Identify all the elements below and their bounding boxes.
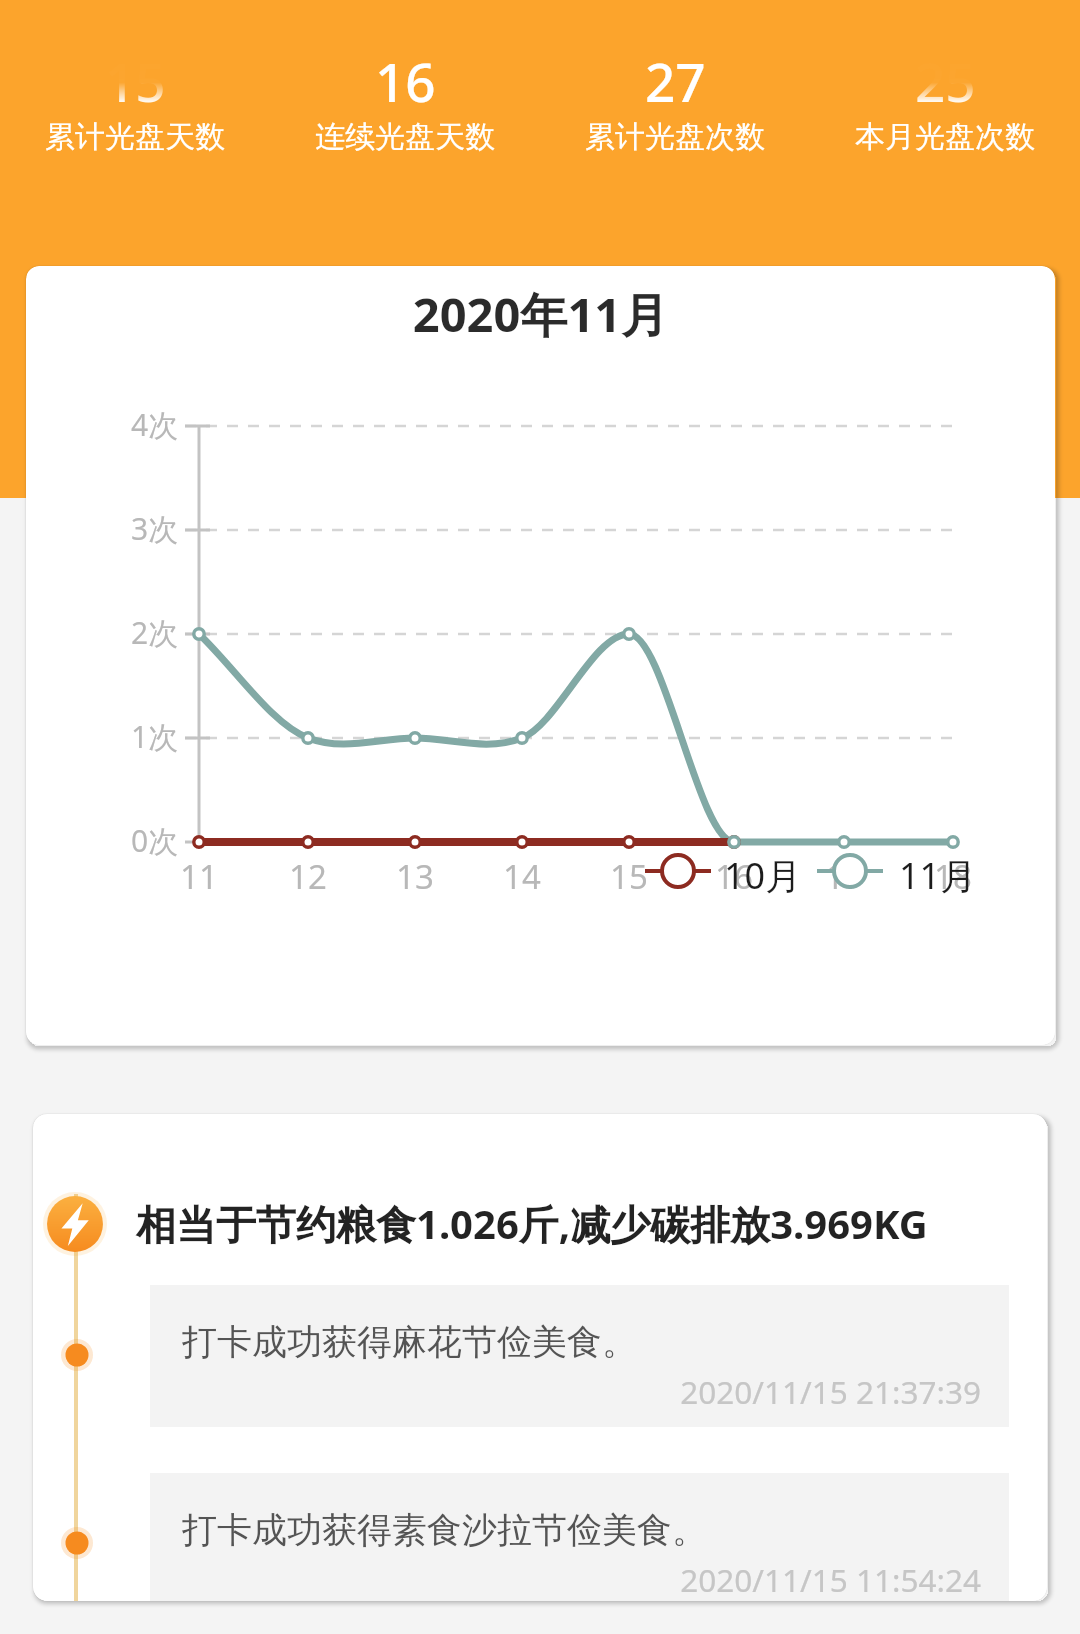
staticText: 4次 (131, 404, 179, 445)
staticText: 打卡成功获得素食沙拉节俭美食。 (182, 1508, 707, 1552)
staticText: 0次 (131, 820, 179, 861)
button[interactable]: 打卡成功获得麻花节俭美食。 (150, 1285, 1009, 1427)
staticText: 12 (289, 854, 327, 899)
staticText: 13 (396, 854, 434, 899)
staticText: 27 (645, 45, 706, 103)
staticText: 11 (180, 854, 218, 899)
staticText: 2020/11/15 21:37:39 (150, 1370, 981, 1413)
staticText: 2次 (131, 612, 179, 653)
staticText: 10月 (724, 851, 802, 900)
staticText: 15 (610, 854, 648, 899)
button[interactable]: 打卡成功获得素食沙拉节俭美食。 (150, 1473, 1009, 1601)
staticText: 17 (825, 854, 863, 899)
staticText: 14 (503, 854, 541, 899)
staticText: 相当于节约粮食1.026斤,减少碳排放3.969KG (136, 1196, 928, 1251)
staticText: 11月 (899, 851, 977, 900)
button[interactable]: 10月 (645, 845, 796, 897)
staticText: 25 (915, 45, 976, 103)
staticText: 16 (375, 45, 436, 103)
staticText: 累计光盘次数 (585, 118, 765, 156)
button[interactable]: 27 (540, 0, 810, 180)
button[interactable]: 16 (270, 0, 540, 180)
button[interactable]: 节能 (43, 1192, 107, 1256)
staticText: 1次 (131, 716, 179, 757)
staticText: 打卡成功获得麻花节俭美食。 (182, 1320, 637, 1364)
staticText: 16 (715, 854, 753, 899)
staticText: 3次 (131, 508, 179, 549)
staticText: 累计光盘天数 (45, 118, 225, 156)
staticText: 15 (105, 45, 166, 103)
button[interactable]: 25 (810, 0, 1080, 180)
staticText: 2020/11/15 11:54:24 (150, 1558, 981, 1601)
staticText: 18 (934, 854, 972, 899)
button[interactable]: 11月 (817, 845, 971, 897)
button[interactable]: 15 (0, 0, 270, 180)
staticText: 连续光盘天数 (315, 118, 495, 156)
staticText: 本月光盘次数 (855, 118, 1035, 156)
staticText: 2020年11月 (26, 282, 1055, 346)
